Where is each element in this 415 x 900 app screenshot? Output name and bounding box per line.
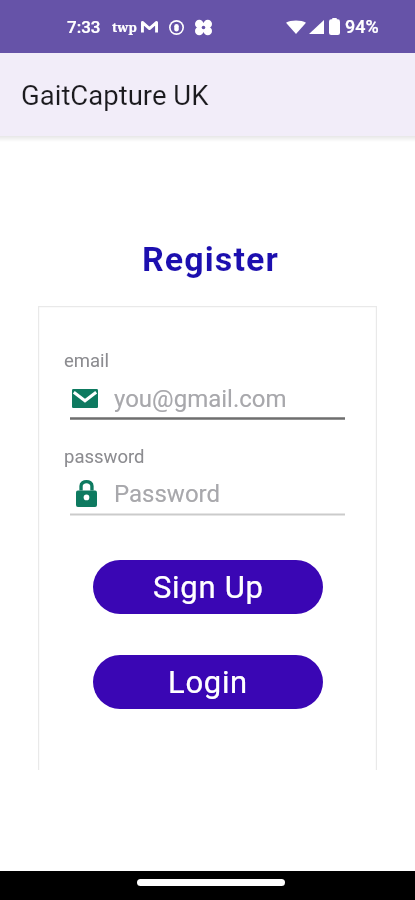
staticText: you@gmail.com xyxy=(114,385,287,413)
staticText: password xyxy=(64,446,145,468)
staticText: Register xyxy=(3,239,415,279)
staticText: Sign Up xyxy=(153,569,264,605)
button[interactable]: Password xyxy=(70,478,345,516)
staticText: 94% xyxy=(345,16,379,37)
other: Home xyxy=(137,879,285,886)
button[interactable]: Login xyxy=(93,655,323,709)
staticText: 7:33 xyxy=(67,17,101,37)
staticText: GaitCapture UK xyxy=(21,79,209,111)
staticText: Login xyxy=(168,664,248,700)
staticText: twp xyxy=(112,18,137,36)
button[interactable]: you@gmail.com xyxy=(70,383,345,420)
staticText: Password xyxy=(114,480,221,508)
staticText: email xyxy=(64,350,110,372)
button[interactable]: Sign Up xyxy=(93,560,323,614)
